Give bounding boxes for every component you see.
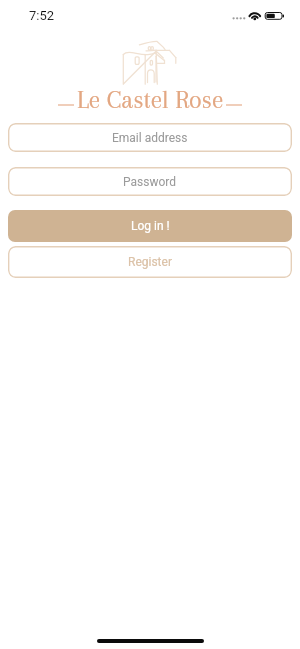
staticText: 7:52 <box>29 8 55 23</box>
staticText: Log in ! <box>131 219 170 233</box>
button[interactable]: Log in ! <box>8 210 292 242</box>
staticText: Password <box>123 175 177 189</box>
staticText: Le Castel Rose <box>77 85 224 113</box>
button[interactable]: Email address <box>8 123 292 152</box>
staticText: Register <box>128 255 172 269</box>
button[interactable]: Password <box>8 167 292 196</box>
button[interactable]: Register <box>8 246 292 278</box>
other: Status icons <box>0 0 300 27</box>
staticText: Email address <box>112 131 188 145</box>
